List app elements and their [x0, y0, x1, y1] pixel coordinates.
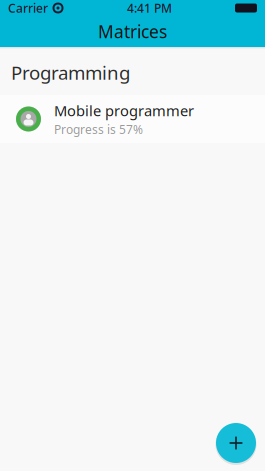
staticText: Programming — [11, 60, 130, 85]
staticText: Carrier — [8, 0, 48, 16]
staticText: Mobile programmer — [54, 101, 194, 120]
button[interactable]: Add — [214, 421, 258, 465]
staticText: Matrices — [98, 20, 167, 43]
staticText: 4:41 PM — [127, 0, 172, 16]
button[interactable]: Mobile programmer — [0, 95, 265, 143]
staticText: Progress is 57% — [54, 121, 143, 137]
